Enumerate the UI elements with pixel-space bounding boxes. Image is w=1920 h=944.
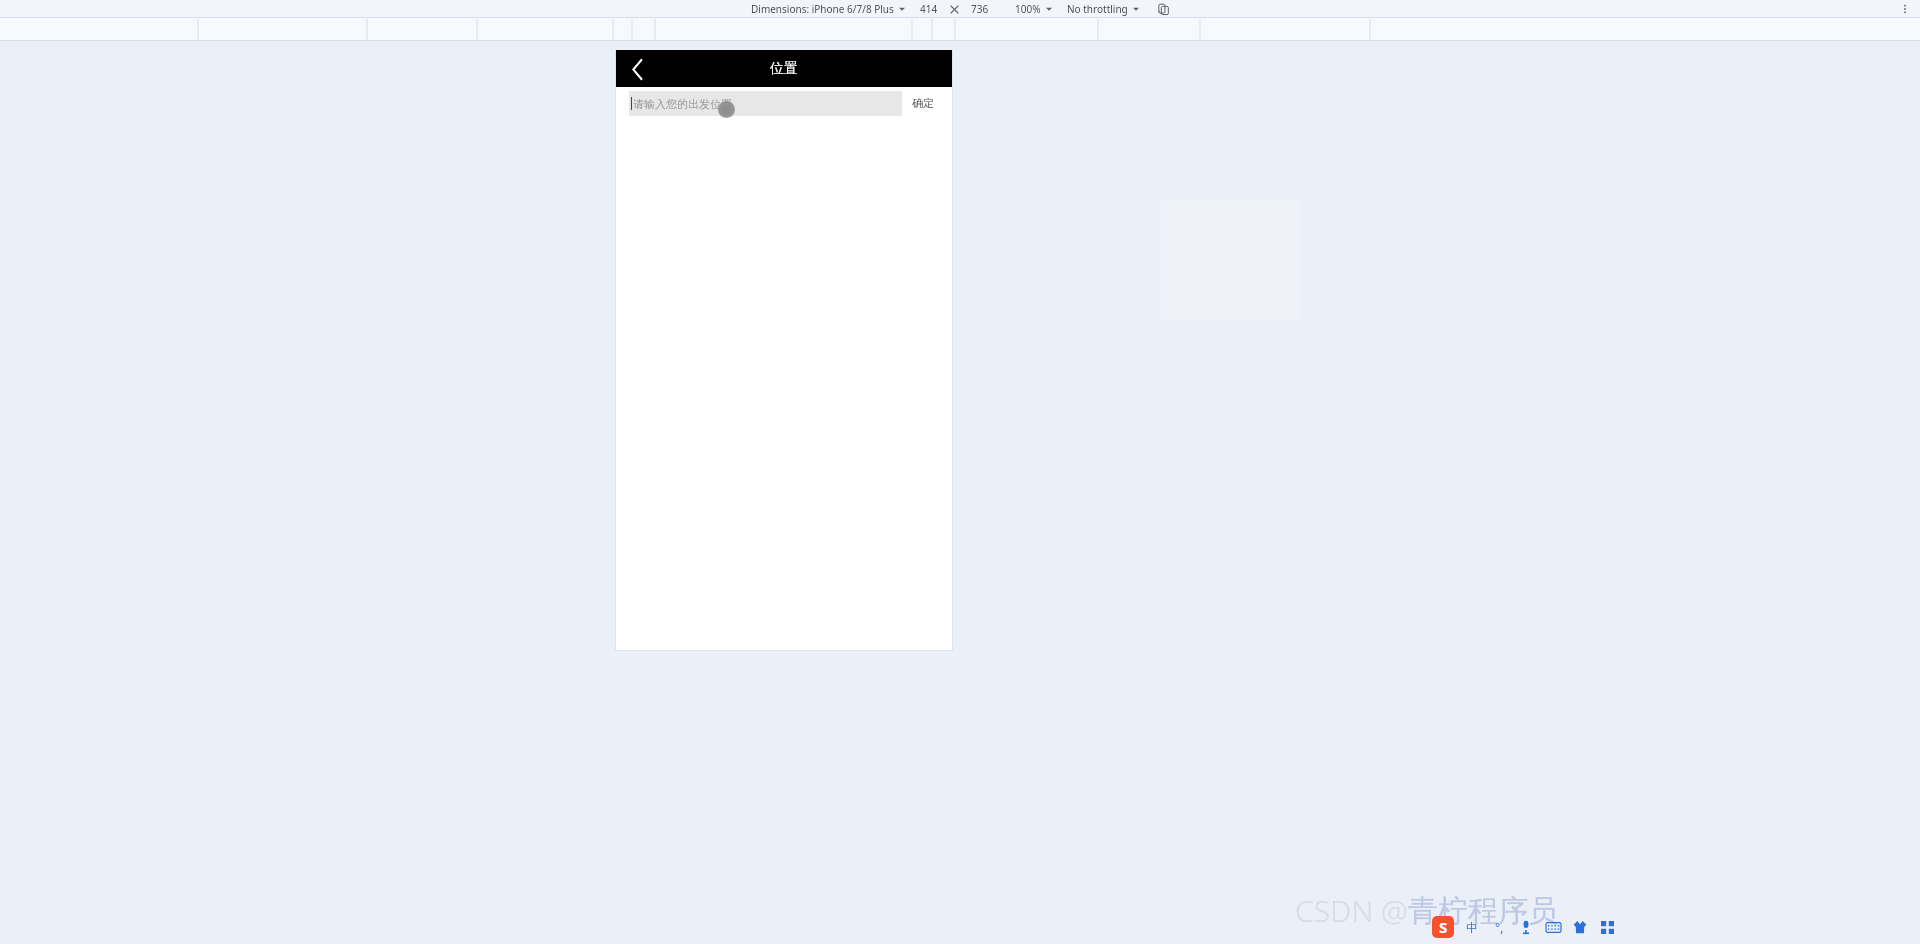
button[interactable]: 确定	[912, 89, 934, 117]
button[interactable]: Expand	[1132, 5, 1140, 13]
button[interactable]: Keyboard	[1544, 918, 1562, 936]
staticText: CSDN @	[1295, 890, 1408, 931]
staticText: 中	[1466, 920, 1478, 935]
staticText: 请输入您的出发位置	[633, 97, 732, 111]
staticText: S	[1439, 917, 1448, 937]
button[interactable]: More options	[1898, 2, 1912, 16]
staticText: 100%	[1015, 2, 1041, 16]
button[interactable]: Sogou input	[1432, 916, 1454, 938]
staticText: No throttling	[1067, 2, 1128, 16]
button[interactable]: 100%	[1015, 2, 1041, 16]
button[interactable]: Skin	[1571, 918, 1589, 936]
button[interactable]: Chinese mode	[1463, 918, 1481, 936]
button[interactable]: Punctuation	[1490, 918, 1508, 936]
button[interactable]: 414	[920, 2, 938, 16]
button[interactable]: Expand	[898, 5, 906, 13]
staticText: 736	[971, 2, 989, 16]
button[interactable]: Expand	[1045, 5, 1053, 13]
button[interactable]: 请输入您的出发位置	[629, 91, 902, 116]
button[interactable]: Rotate	[1156, 2, 1170, 16]
staticText: °,	[1495, 919, 1504, 935]
button[interactable]: Back	[623, 55, 651, 83]
staticText: 确定	[912, 96, 934, 110]
button[interactable]: Dimensions: iPhone 6/7/8 Plus	[751, 2, 894, 16]
staticText: 414	[920, 2, 938, 16]
staticText: Dimensions: iPhone 6/7/8 Plus	[751, 2, 894, 16]
staticText: 位置	[770, 60, 798, 78]
staticText: 青柠程序员	[1408, 892, 1558, 930]
button[interactable]: More tools	[1598, 918, 1616, 936]
button[interactable]: No throttling	[1067, 2, 1128, 16]
button[interactable]: 736	[971, 2, 989, 16]
button[interactable]: Voice input	[1517, 918, 1535, 936]
